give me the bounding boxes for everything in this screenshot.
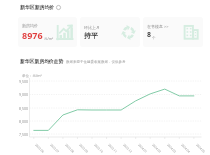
staticText: 2023.07 [49,143,60,154]
staticText: 新华区新房均价 [20,4,55,10]
staticText: 8 [147,30,152,40]
staticText: 单位：元/m² [22,73,42,78]
button[interactable]: 在售楼盘 >> [143,17,203,47]
button[interactable]: 新房均价 [18,17,77,47]
staticText: 在售楼盘 >> [147,24,169,29]
staticText: 环比上月 [84,25,100,30]
button[interactable]: 新华区新房均价 [20,4,61,10]
other: 均价走势 [56,24,73,41]
staticText: 个 [152,36,156,40]
staticText: 2023.08 [64,143,75,154]
staticText: 2024.05 [195,143,206,154]
staticText: 新华区新房均价走势 [20,58,64,64]
staticText: 持平 [84,31,98,40]
staticText: 2023.09 [78,143,89,154]
other: 环比持平 [121,25,136,40]
other: 在售楼盘 [183,24,199,40]
staticText: 2024.01 [137,143,148,154]
staticText: 9,500 [19,79,28,84]
staticText: 8,500 [19,106,28,111]
staticText: 9,000 [19,92,28,97]
staticText: 2024.02 [151,143,162,154]
staticText: 2024.04 [180,143,191,154]
button[interactable]: 环比上月 [80,17,140,47]
staticText: 2023.11 [107,143,118,154]
staticText: 2023.06 [34,143,45,154]
staticText: 2023.10 [93,143,104,154]
staticText: 8,000 [19,119,28,124]
staticText: 新房均价 [22,23,38,28]
staticText: 2023.12 [122,143,133,154]
staticText: 元/m² [44,36,54,41]
other: 说明 [56,5,61,10]
staticText: 8976 [22,29,43,41]
staticText: 数据来源于住建委备案数据，仅供参考 [66,60,126,64]
staticText: 7,500 [19,132,28,137]
staticText: 2024.03 [166,143,177,154]
